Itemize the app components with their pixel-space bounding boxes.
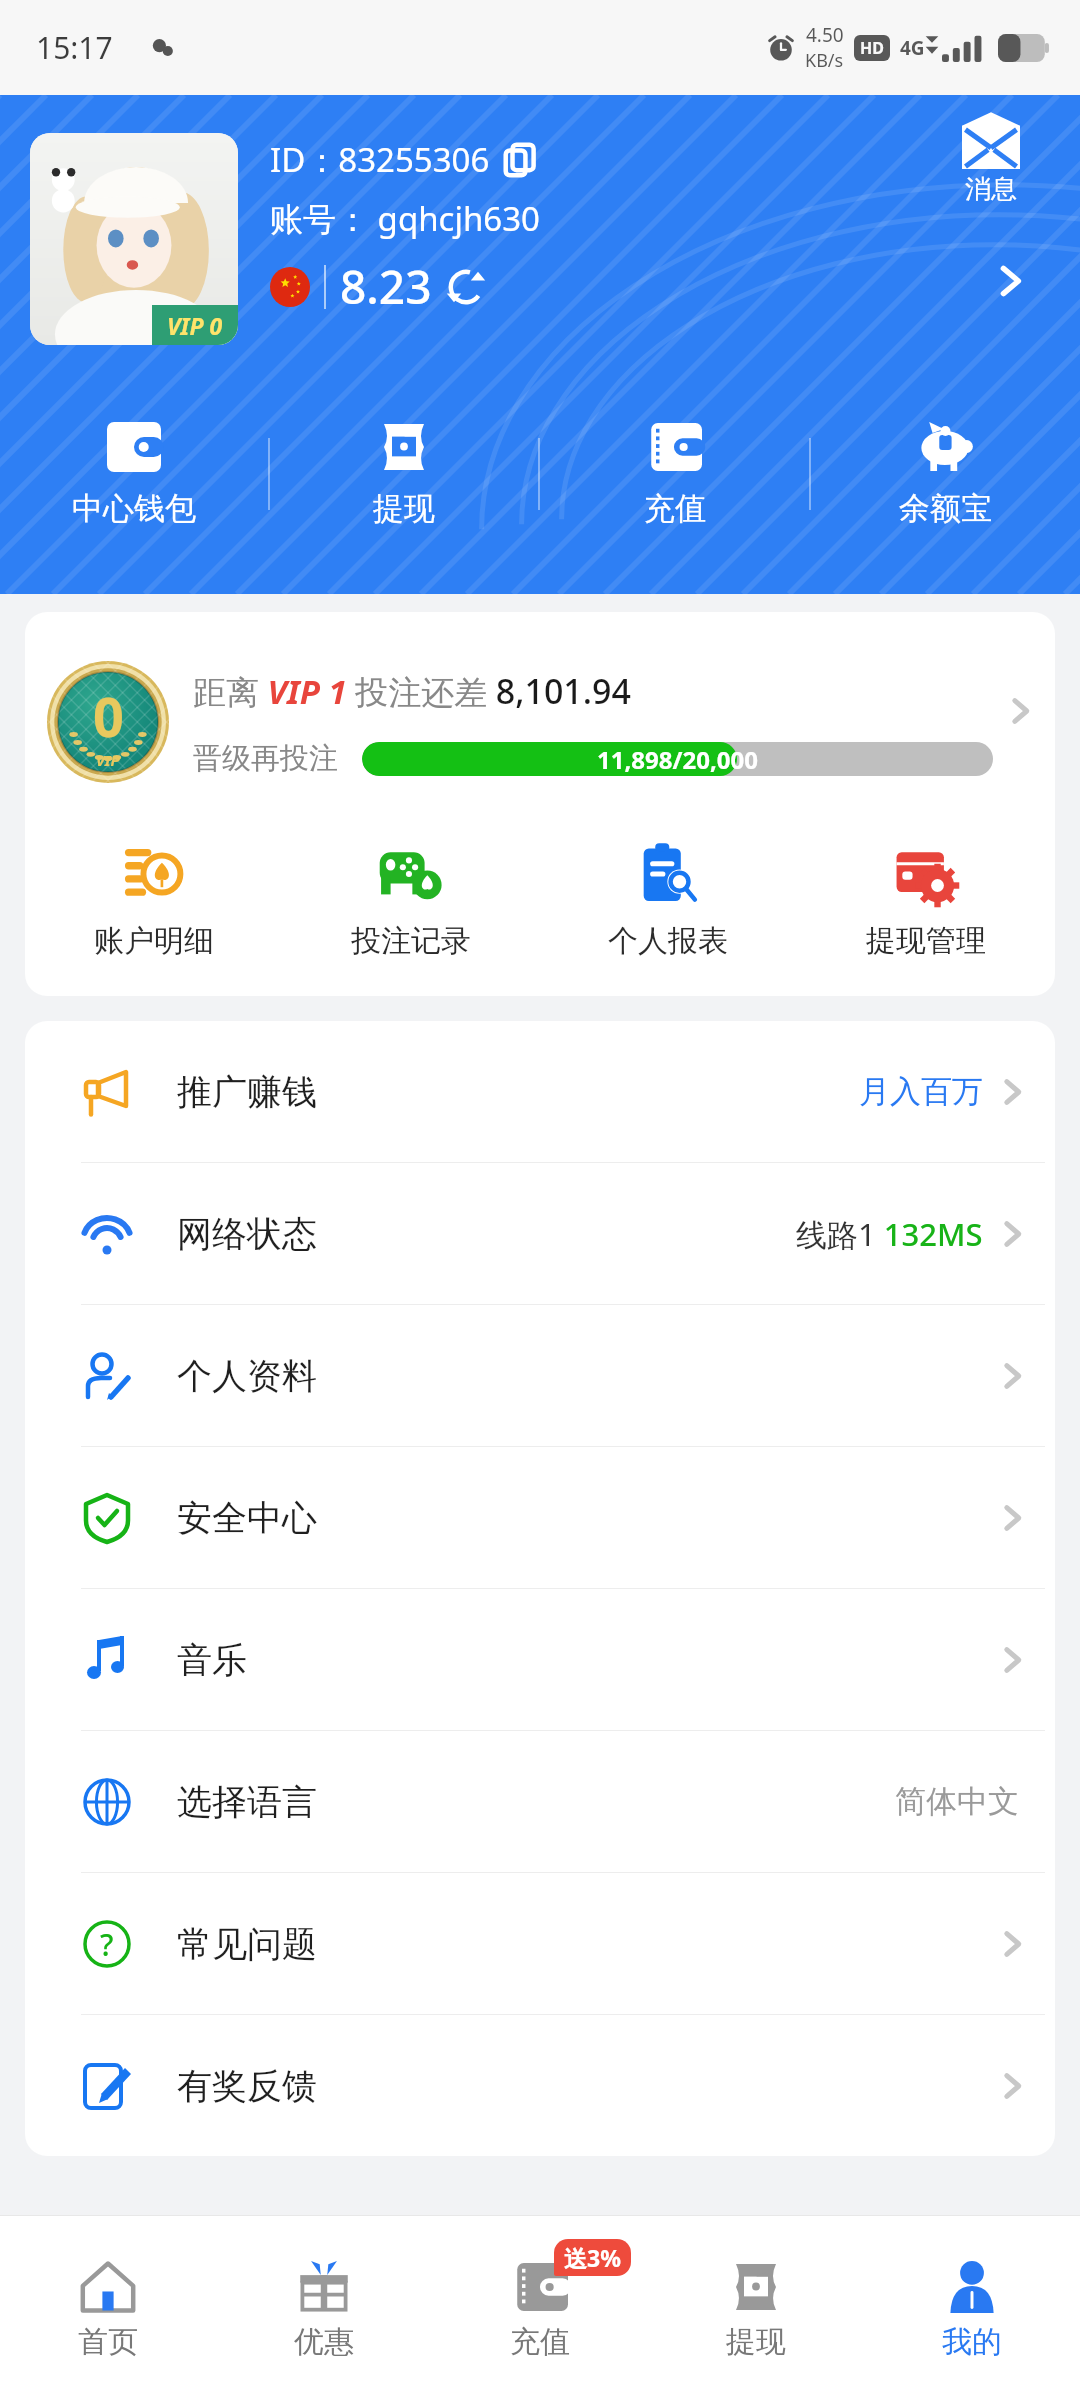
- staticText: 线路1 132MS: [796, 1213, 983, 1255]
- button[interactable]: 我的: [864, 2216, 1080, 2400]
- button[interactable]: 提现管理: [797, 832, 1055, 966]
- button[interactable]: 账户明细: [25, 832, 282, 966]
- staticText: ID：83255306: [270, 137, 490, 182]
- staticText: 网络状态: [177, 1212, 317, 1256]
- staticText: 提现: [373, 489, 435, 528]
- staticText: HD: [860, 37, 884, 59]
- button[interactable]: 提现: [648, 2216, 864, 2400]
- button[interactable]: 首页: [0, 2216, 216, 2400]
- staticText: 余额宝: [899, 489, 992, 528]
- button[interactable]: Account details: [982, 253, 1038, 309]
- staticText: 选择语言: [177, 1780, 317, 1824]
- staticText: 中心钱包: [72, 489, 196, 528]
- button[interactable]: 个人资料: [25, 1305, 1055, 1446]
- staticText: 常见问题: [177, 1922, 317, 1966]
- staticText: 推广赚钱: [177, 1070, 317, 1114]
- button[interactable]: 个人报表: [539, 832, 797, 966]
- staticText: 送3%: [564, 2242, 621, 2273]
- staticText: 音乐: [177, 1638, 247, 1682]
- staticText: 我的: [942, 2323, 1002, 2361]
- staticText: 4G: [900, 35, 925, 61]
- staticText: 15:17: [36, 27, 113, 68]
- staticText: 账号： gqhcjh630: [270, 196, 540, 241]
- staticText: 8.23: [340, 255, 432, 318]
- staticText: VIP: [96, 750, 120, 770]
- button[interactable]: 投注记录: [282, 832, 539, 966]
- button[interactable]: 选择语言: [25, 1731, 1055, 1872]
- button[interactable]: 优惠: [216, 2216, 432, 2400]
- staticText: 个人资料: [177, 1354, 317, 1398]
- staticText: 提现: [726, 2323, 786, 2361]
- button[interactable]: 0: [25, 612, 1055, 832]
- button[interactable]: 有奖反馈: [25, 2015, 1055, 2156]
- staticText: 安全中心: [177, 1496, 317, 1540]
- staticText: 充值: [644, 489, 706, 528]
- button[interactable]: ?: [25, 1873, 1055, 2014]
- staticText: 晋级再投注: [193, 740, 338, 777]
- staticText: 个人报表: [608, 922, 728, 960]
- staticText: 账户明细: [94, 922, 214, 960]
- staticText: 投注记录: [351, 922, 471, 960]
- button[interactable]: 消息: [958, 117, 1024, 210]
- staticText: VIP 0: [167, 310, 223, 341]
- staticText: 距离 VIP 1 投注还差 8,101.94: [193, 668, 631, 714]
- staticText: 简体中文: [895, 1782, 1019, 1821]
- staticText: 首页: [78, 2323, 138, 2361]
- staticText: 优惠: [294, 2323, 354, 2361]
- button[interactable]: 充值: [540, 415, 809, 532]
- button[interactable]: Refresh balance: [444, 265, 488, 309]
- staticText: 0: [93, 679, 124, 753]
- button[interactable]: 中心钱包: [0, 415, 268, 532]
- button[interactable]: Avatar: [30, 133, 238, 345]
- button[interactable]: 推广赚钱: [25, 1021, 1055, 1162]
- button[interactable]: 余额宝: [811, 415, 1080, 532]
- button[interactable]: 网络状态: [25, 1163, 1055, 1304]
- button[interactable]: 提现: [270, 415, 538, 532]
- button[interactable]: 音乐: [25, 1589, 1055, 1730]
- staticText: KB/s: [805, 48, 844, 73]
- button[interactable]: 安全中心: [25, 1447, 1055, 1588]
- staticText: ?: [100, 1924, 114, 1965]
- staticText: 消息: [965, 173, 1017, 206]
- staticText: 4.50: [806, 22, 844, 48]
- staticText: 提现管理: [866, 922, 986, 960]
- button[interactable]: Copy ID: [500, 140, 540, 180]
- button[interactable]: 送3%: [432, 2216, 648, 2400]
- staticText: 有奖反馈: [177, 2064, 317, 2108]
- staticText: 充值: [510, 2323, 570, 2361]
- staticText: 11,898/20,000: [597, 743, 758, 776]
- staticText: 月入百万: [859, 1072, 983, 1111]
